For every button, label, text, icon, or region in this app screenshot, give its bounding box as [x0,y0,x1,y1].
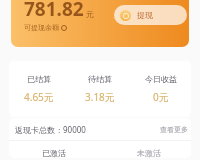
staticText: 已结算 [27,74,51,84]
button[interactable]: 已激活 [9,141,98,158]
staticText: 返现卡总数：90000 [15,124,86,135]
staticText: 元 [86,9,94,19]
staticText: 781.82 [24,0,84,22]
staticText: 已激活 [42,148,66,158]
button[interactable]: 未激活 [98,141,191,158]
staticText: 0元 [153,90,169,104]
button[interactable]: 提现 [114,5,187,25]
staticText: 可提现余额 [24,23,59,32]
staticText: 4.65元 [24,90,54,104]
staticText: 未激活 [137,148,161,158]
staticText: 3.18元 [85,90,115,104]
staticText: 查看更多 [160,125,188,134]
staticText: 今日收益 [145,74,177,84]
staticText: 待结算 [88,74,112,84]
staticText: 提现 [137,10,153,20]
button[interactable]: 查看更多 [158,123,190,136]
